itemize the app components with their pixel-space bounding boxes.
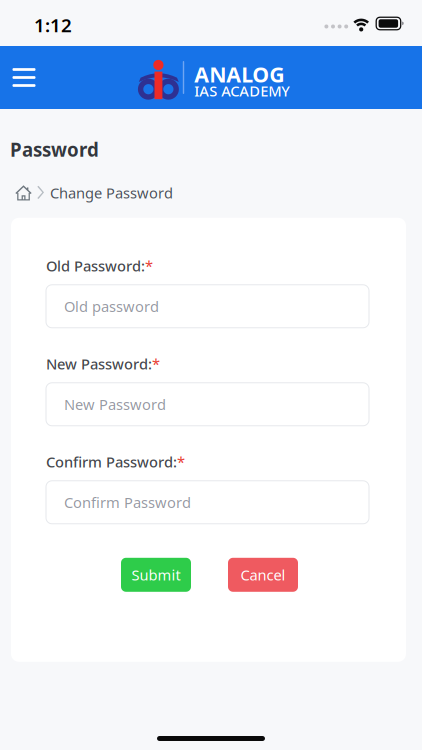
button[interactable]: Submit [121,558,191,592]
staticText: 1:12 [34,13,72,37]
button[interactable]: Menu [2,55,46,99]
staticText: Password [10,137,99,162]
staticText: New Password: [46,354,152,374]
staticText: * [145,256,153,276]
staticText: ANALOG [194,60,284,88]
staticText: * [177,452,185,472]
staticText: Old Password: [46,256,145,276]
staticText: Submit [131,565,180,585]
staticText: Old password [64,297,159,316]
staticText: New Password [64,395,166,414]
staticText: * [152,354,160,374]
staticText: Cancel [240,565,285,585]
button[interactable]: Cancel [228,558,298,592]
staticText: Confirm Password: [46,452,177,472]
staticText: IAS ACADEMY [194,81,290,100]
staticText: Change Password [50,183,173,203]
staticText: Confirm Password [64,493,191,512]
